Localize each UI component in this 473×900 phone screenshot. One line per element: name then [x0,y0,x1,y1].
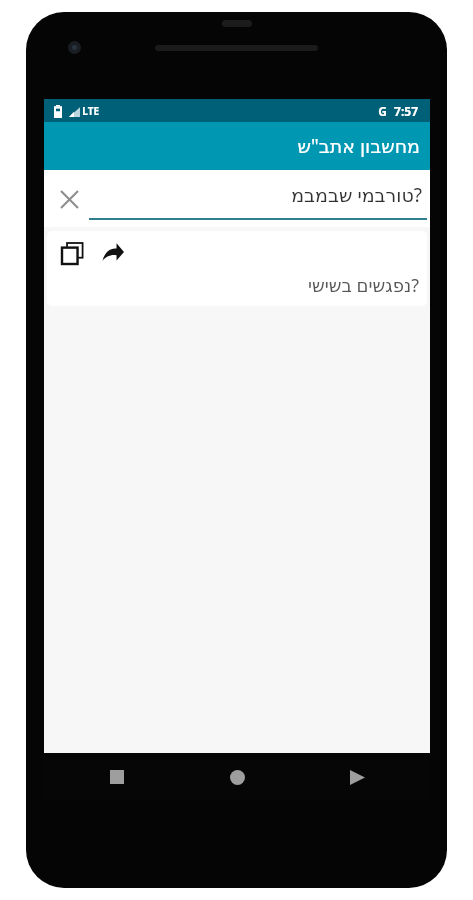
button[interactable]: Recents [96,756,138,798]
button[interactable]: Share [96,236,130,270]
button[interactable]: Home [216,756,258,798]
staticText: LTE [82,104,99,118]
button[interactable]: Back [336,756,378,798]
staticText: נפגשים בשישי? [307,273,419,298]
button[interactable]: Clear [50,180,88,218]
staticText: מחשבון אתב"ש [297,133,420,159]
staticText: טורבמי שבמבמ? [291,182,422,208]
staticText: G [378,103,387,119]
staticText: 7:57 [394,103,418,119]
button[interactable]: Copy [55,236,89,270]
button[interactable]: Copy [47,231,427,306]
